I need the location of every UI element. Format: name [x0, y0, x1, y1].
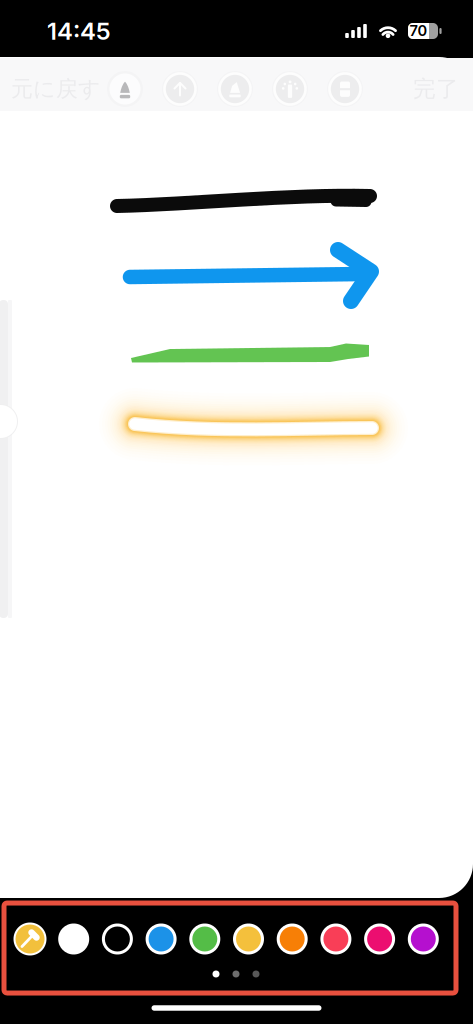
- button[interactable]: カラー: [233, 923, 264, 954]
- button[interactable]: 消しゴム: [327, 71, 363, 107]
- staticText: 70: [409, 22, 427, 39]
- button[interactable]: 共有: [162, 71, 198, 107]
- button[interactable]: スポイト: [13, 922, 46, 955]
- button[interactable]: ペン: [107, 71, 143, 107]
- button[interactable]: カラー: [189, 923, 220, 954]
- staticText: 14:45: [47, 16, 111, 45]
- button[interactable]: カラー: [277, 923, 308, 954]
- button[interactable]: 完了: [409, 72, 463, 106]
- button[interactable]: カラー: [146, 923, 177, 954]
- button[interactable]: カラー: [364, 923, 395, 954]
- button[interactable]: カラー: [320, 923, 351, 954]
- button[interactable]: カラー: [102, 923, 133, 954]
- button[interactable]: カラー: [408, 923, 439, 954]
- button[interactable]: カラー: [58, 923, 89, 954]
- button[interactable]: マーカー: [217, 71, 253, 107]
- staticText: 元に戻す: [11, 75, 101, 103]
- button[interactable]: 鉛筆: [272, 71, 308, 107]
- staticText: 完了: [413, 75, 459, 103]
- button[interactable]: 元に戻す: [10, 72, 102, 106]
